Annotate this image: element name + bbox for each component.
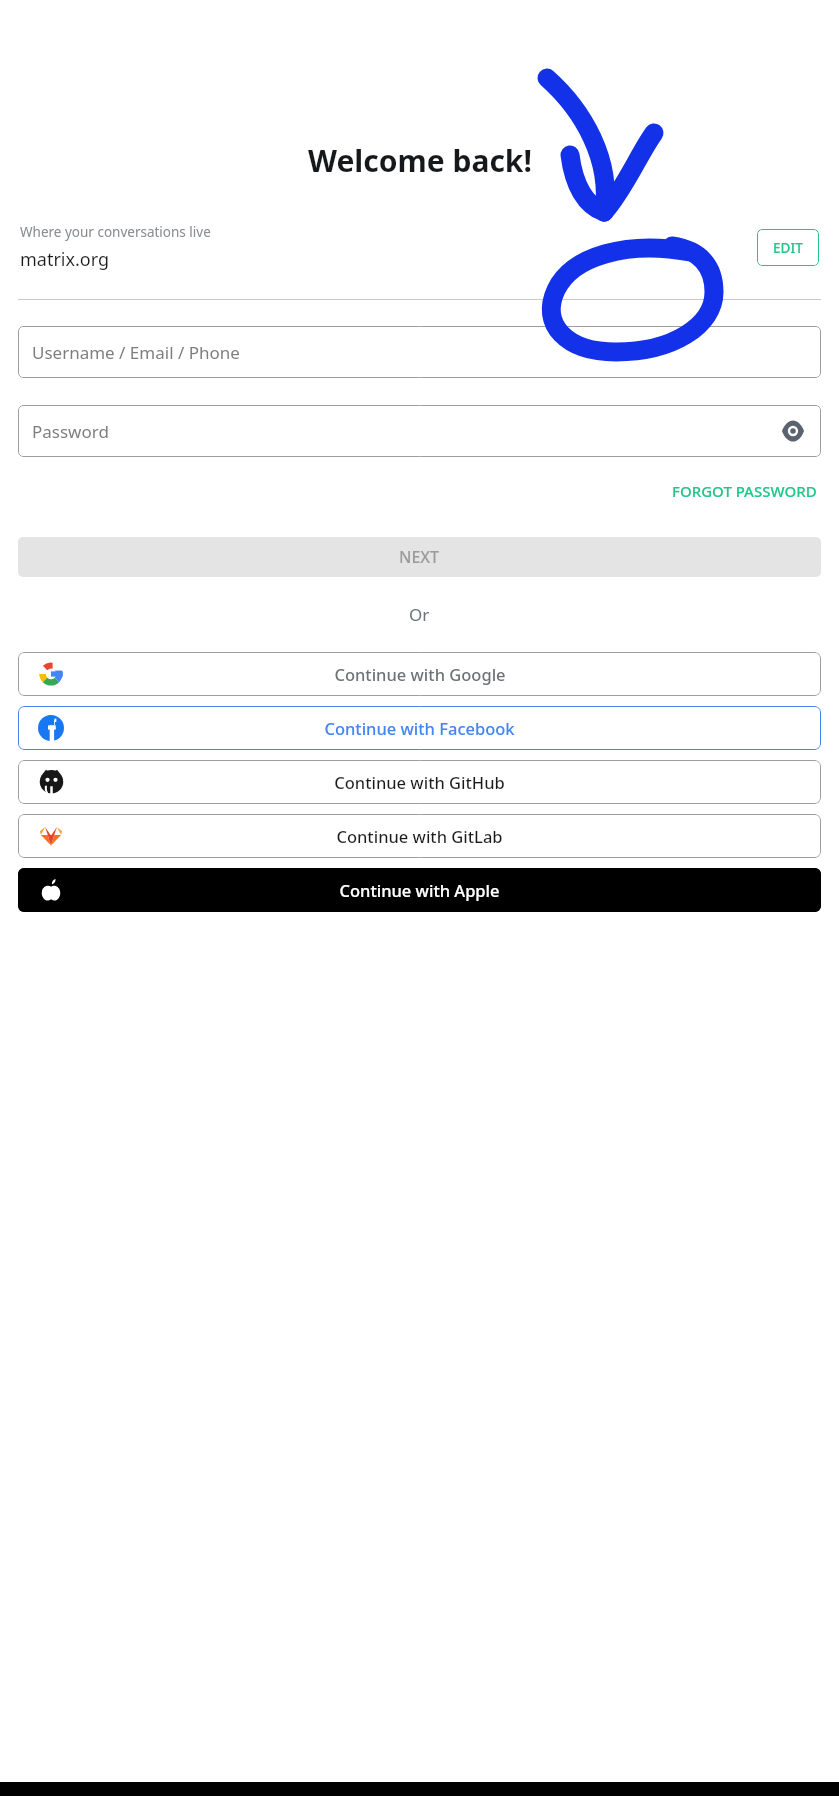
staticText: Continue with Google bbox=[334, 663, 506, 685]
button[interactable]: NEXT bbox=[18, 537, 821, 577]
staticText: Continue with GitHub bbox=[334, 771, 505, 793]
button[interactable]: Continue with Apple bbox=[18, 868, 821, 912]
button[interactable]: EDIT bbox=[757, 229, 819, 266]
button[interactable]: Continue with GitLab bbox=[18, 814, 821, 858]
button[interactable]: Show password bbox=[779, 417, 807, 445]
staticText: Or bbox=[409, 603, 430, 626]
button[interactable]: Password bbox=[18, 405, 821, 457]
staticText: EDIT bbox=[773, 239, 803, 257]
staticText: Continue with Facebook bbox=[324, 717, 515, 739]
button[interactable]: Username / Email / Phone bbox=[18, 326, 821, 378]
button[interactable]: Continue with Google bbox=[18, 652, 821, 696]
staticText: FORGOT PASSWORD bbox=[672, 481, 817, 501]
staticText: NEXT bbox=[399, 546, 440, 568]
button[interactable]: FORGOT PASSWORD bbox=[668, 477, 821, 505]
staticText: Continue with Apple bbox=[339, 879, 500, 901]
staticText: Welcome back! bbox=[308, 140, 532, 181]
staticText: Where your conversations live bbox=[20, 223, 211, 241]
button[interactable]: Continue with Facebook bbox=[18, 706, 821, 750]
staticText: Username / Email / Phone bbox=[32, 341, 240, 364]
staticText: matrix.org bbox=[20, 247, 110, 272]
staticText: Continue with GitLab bbox=[336, 825, 503, 847]
staticText: Password bbox=[32, 420, 779, 443]
button[interactable]: Continue with GitHub bbox=[18, 760, 821, 804]
